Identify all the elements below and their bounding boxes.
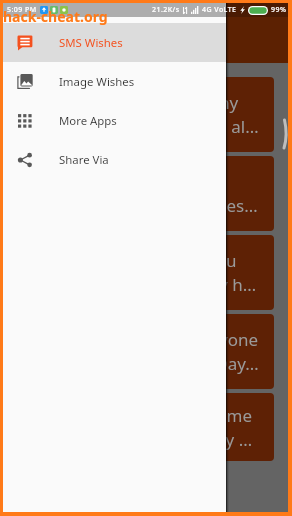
button[interactable]: Share Via (3, 140, 226, 179)
staticText: You are the only one for me in this one.… (31, 404, 260, 451)
staticText: 99% (271, 5, 287, 15)
button[interactable]: I love you so much and I always will. Ma… (17, 156, 274, 231)
staticText: Share Via (59, 152, 109, 168)
staticText: Happy Birthday to you my dear friend. Wi… (31, 91, 260, 138)
button[interactable]: Happy Anniversary to you both. Wishing y… (17, 235, 274, 310)
staticText: Happy Anniversary to you both. Wishing y… (31, 249, 260, 296)
button[interactable]: SMS Wishes (3, 23, 226, 62)
button[interactable]: More Apps (3, 101, 226, 140)
staticText: Warm greetings to everyone on this lovel… (31, 328, 260, 375)
button[interactable]: Happy Birthday to you my dear friend. Wi… (17, 77, 274, 152)
staticText: I love you so much and I always will. Ma… (31, 170, 260, 217)
staticText: SMS Wishes (59, 35, 123, 51)
staticText: Image Wishes (59, 74, 135, 90)
staticText: 21.2K/s (152, 5, 180, 15)
staticText: hack-cheat.org (3, 7, 108, 26)
staticText: 4G VoLTE (202, 5, 237, 15)
staticText: More Apps (59, 113, 117, 129)
button[interactable]: You are the only one for me in this one.… (17, 393, 274, 461)
staticText: 5:09 PM (7, 5, 37, 15)
button[interactable]: Image Wishes (3, 62, 226, 101)
button[interactable]: Warm greetings to everyone on this lovel… (17, 314, 274, 389)
